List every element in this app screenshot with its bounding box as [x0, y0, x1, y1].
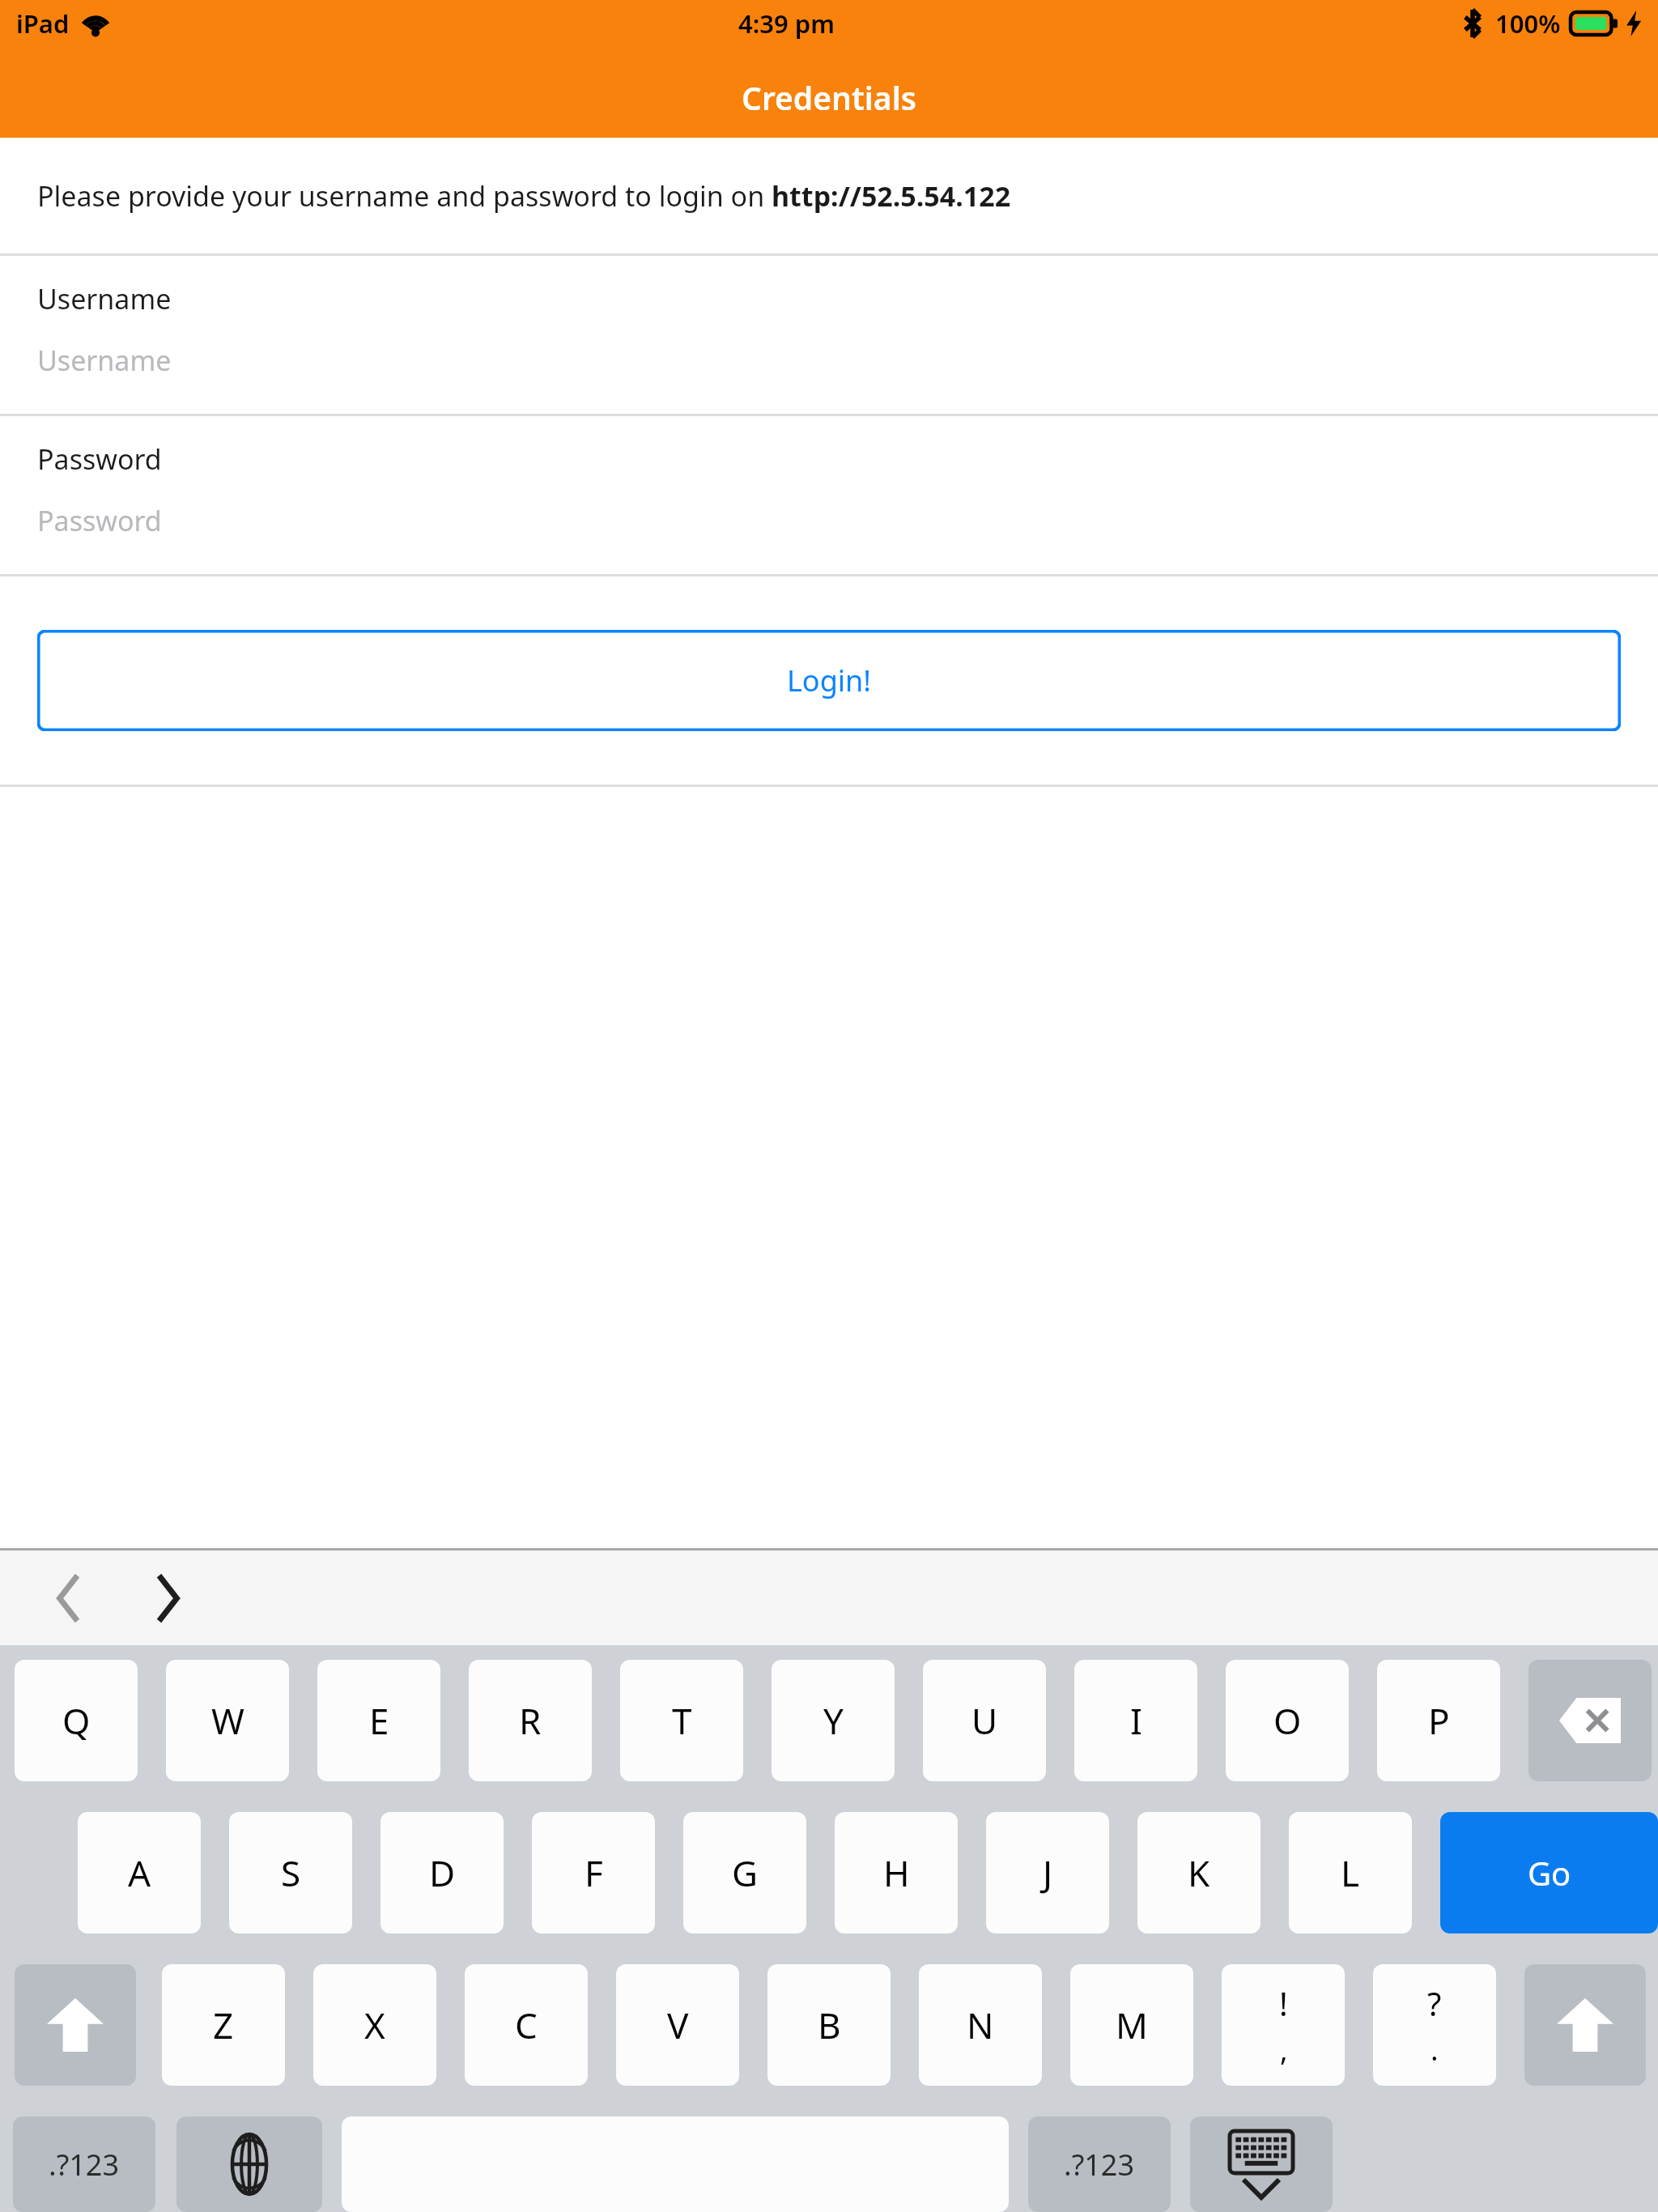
button[interactable]: J — [986, 1812, 1109, 1933]
staticText: H — [883, 1848, 910, 1897]
button[interactable]: Password — [0, 416, 1658, 574]
button[interactable]: .?123 — [13, 2116, 155, 2212]
staticText: W — [211, 1696, 244, 1745]
staticText: , — [1280, 2030, 1288, 2069]
staticText: iPad — [16, 6, 70, 40]
button[interactable]: P — [1377, 1660, 1500, 1781]
staticText: ! — [1279, 1981, 1288, 2025]
button[interactable]: Q — [15, 1660, 138, 1781]
button[interactable]: M — [1070, 1964, 1193, 2086]
button[interactable]: ? — [1373, 1964, 1496, 2086]
staticText: U — [971, 1696, 998, 1745]
staticText: Y — [823, 1696, 844, 1745]
button[interactable]: Y — [772, 1660, 895, 1781]
button[interactable]: H — [835, 1812, 958, 1933]
staticText: B — [818, 2001, 841, 2049]
button[interactable]: Previous field — [39, 1562, 99, 1635]
button[interactable]: Hide keyboard — [1190, 2116, 1333, 2212]
button[interactable]: K — [1137, 1812, 1261, 1933]
staticText: T — [672, 1696, 692, 1745]
button[interactable]: W — [166, 1660, 289, 1781]
staticText: J — [1043, 1848, 1053, 1897]
staticText: R — [519, 1696, 542, 1745]
staticText: C — [515, 2001, 538, 2049]
button[interactable]: R — [469, 1660, 592, 1781]
button[interactable]: Username — [0, 256, 1658, 414]
button[interactable]: ! — [1222, 1964, 1345, 2086]
button[interactable]: B — [767, 1964, 891, 2086]
button[interactable]: F — [532, 1812, 655, 1933]
staticText: P — [1428, 1696, 1450, 1745]
staticText: Password — [37, 440, 162, 478]
button[interactable]: Delete — [1528, 1660, 1652, 1781]
button[interactable]: D — [380, 1812, 504, 1933]
staticText: Credentials — [742, 76, 916, 119]
button[interactable]: Next field — [138, 1562, 198, 1635]
staticText: V — [667, 2001, 689, 2049]
staticText: N — [967, 2001, 994, 2049]
button[interactable]: I — [1074, 1660, 1197, 1781]
button[interactable]: Login! — [37, 630, 1621, 731]
button[interactable]: Space — [342, 2116, 1009, 2212]
button[interactable]: S — [229, 1812, 352, 1933]
staticText: Password — [37, 502, 162, 539]
button[interactable]: Go — [1440, 1812, 1658, 1933]
button[interactable]: C — [465, 1964, 588, 2086]
staticText: ? — [1427, 1981, 1442, 2025]
staticText: F — [585, 1848, 603, 1897]
button[interactable]: A — [78, 1812, 201, 1933]
button[interactable]: G — [683, 1812, 806, 1933]
staticText: Go — [1528, 1851, 1571, 1895]
staticText: E — [369, 1696, 389, 1745]
button[interactable]: V — [616, 1964, 739, 2086]
button[interactable]: O — [1226, 1660, 1349, 1781]
button[interactable]: Switch keyboard — [176, 2116, 322, 2212]
staticText: Z — [213, 2001, 234, 2049]
staticText: I — [1130, 1696, 1142, 1745]
button[interactable]: Shift — [1524, 1964, 1646, 2086]
staticText: O — [1273, 1696, 1302, 1745]
button[interactable]: U — [923, 1660, 1046, 1781]
staticText: 4:39 pm — [738, 6, 835, 40]
staticText: . — [1431, 2030, 1439, 2069]
staticText: Please provide your username and passwor… — [37, 177, 1011, 215]
staticText: G — [732, 1848, 759, 1897]
staticText: Login! — [787, 661, 872, 700]
staticText: L — [1341, 1848, 1360, 1897]
staticText: Q — [62, 1696, 91, 1745]
staticText: Username — [37, 280, 172, 317]
button[interactable]: Shift — [15, 1964, 136, 2086]
button[interactable]: E — [317, 1660, 440, 1781]
button[interactable]: X — [313, 1964, 436, 2086]
staticText: S — [281, 1848, 301, 1897]
button[interactable]: N — [919, 1964, 1042, 2086]
staticText: D — [429, 1848, 456, 1897]
staticText: X — [364, 2001, 385, 2049]
button[interactable]: L — [1289, 1812, 1412, 1933]
staticText: Username — [37, 342, 172, 379]
staticText: M — [1116, 2001, 1148, 2049]
staticText: 100% — [1495, 6, 1561, 40]
staticText: A — [128, 1848, 151, 1897]
staticText: .?123 — [49, 2145, 120, 2184]
staticText: .?123 — [1064, 2145, 1135, 2184]
button[interactable]: Z — [162, 1964, 285, 2086]
staticText: K — [1188, 1848, 1210, 1897]
button[interactable]: .?123 — [1028, 2116, 1171, 2212]
button[interactable]: T — [620, 1660, 743, 1781]
